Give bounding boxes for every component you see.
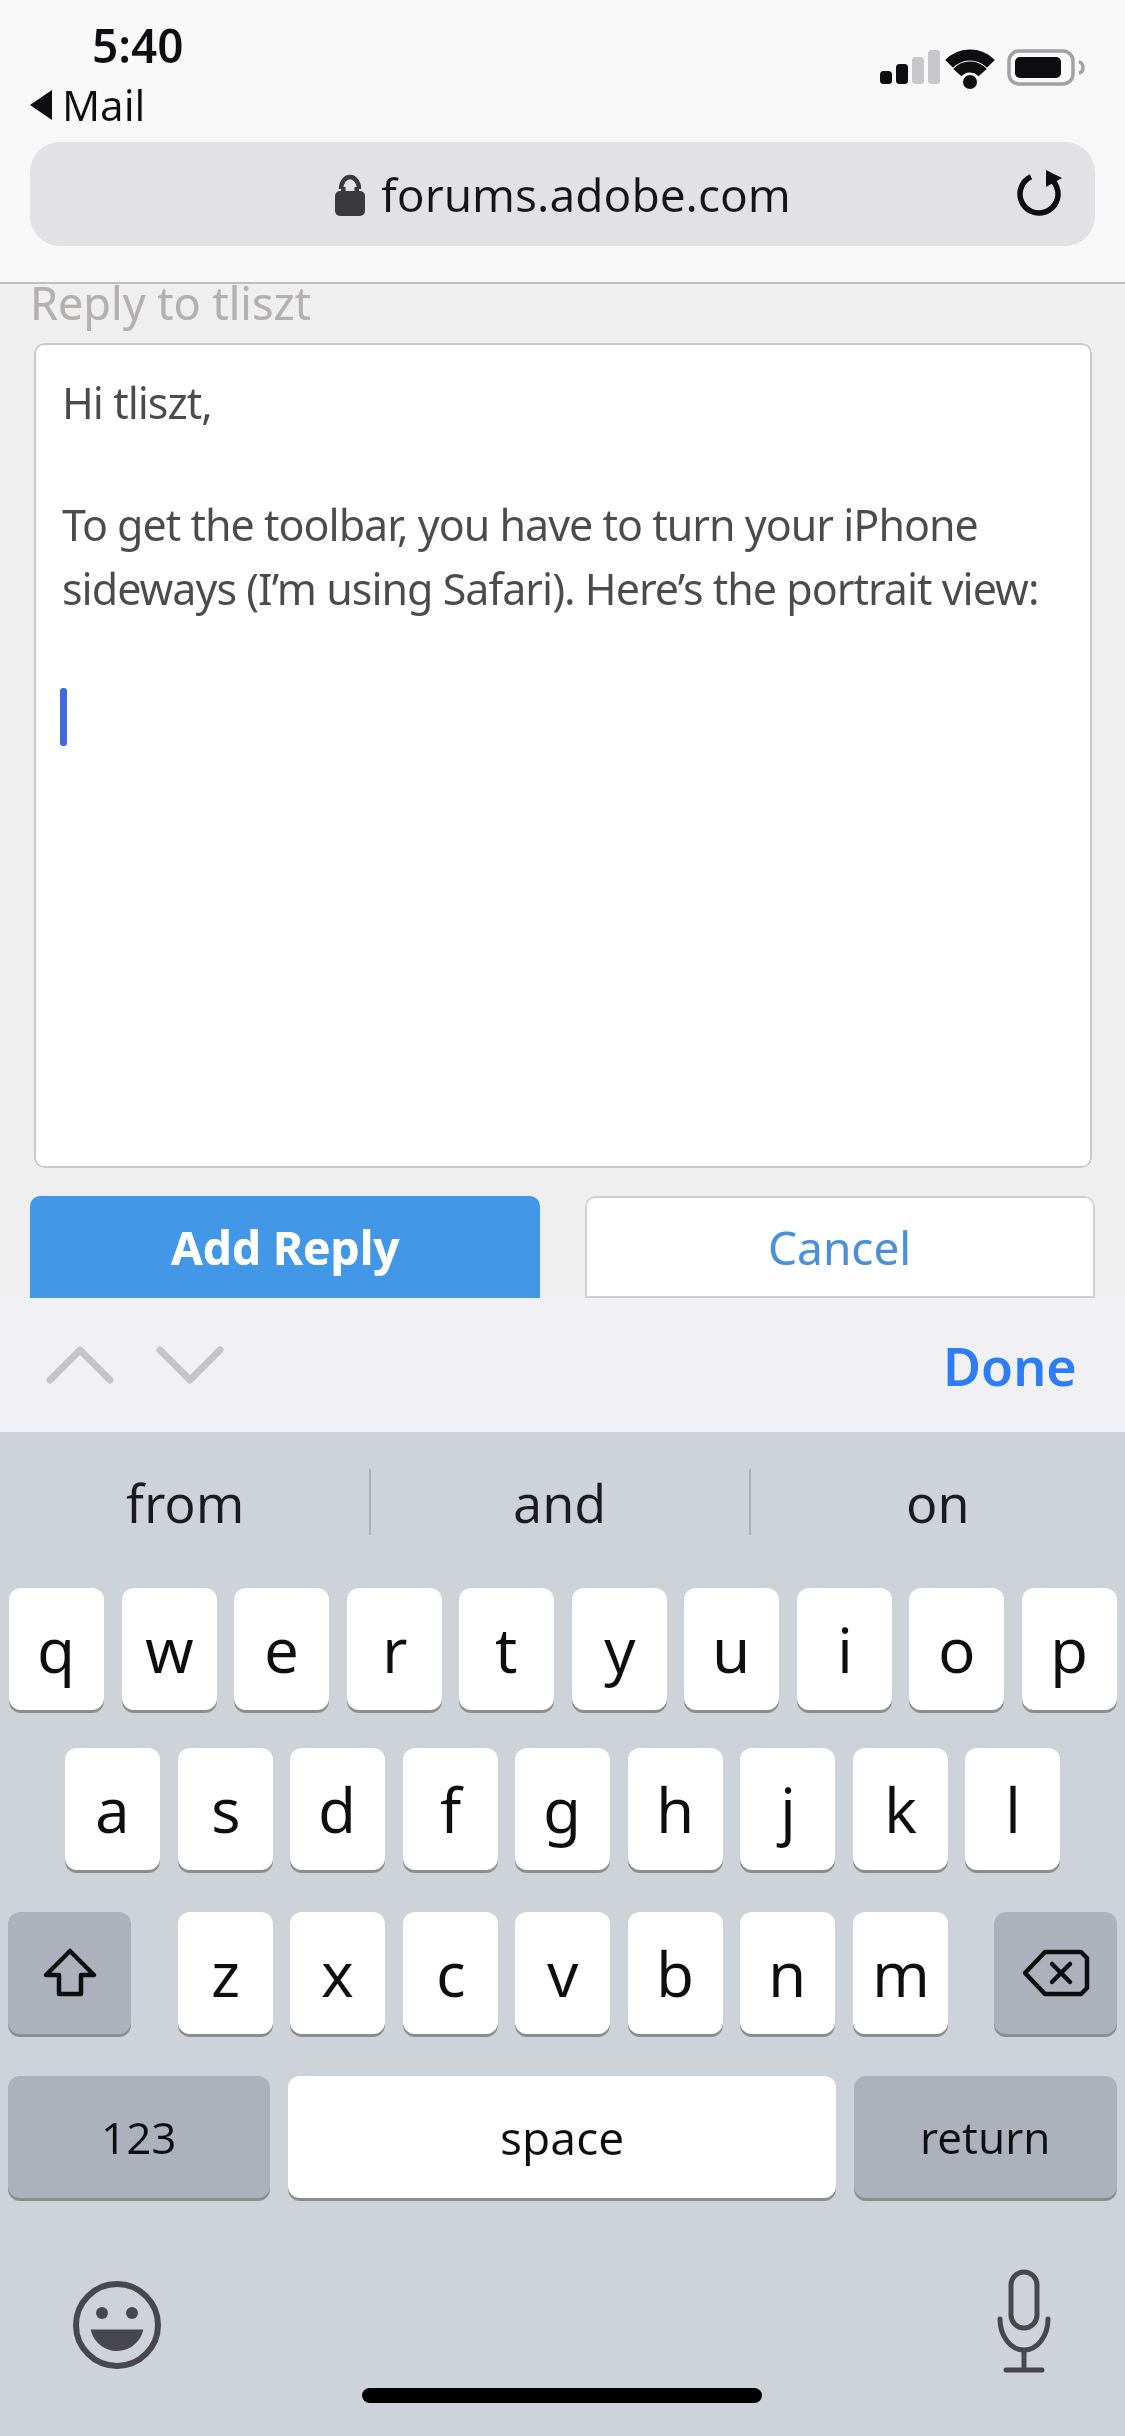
staticText: k bbox=[884, 1767, 918, 1851]
button[interactable] bbox=[155, 1342, 225, 1388]
button[interactable]: d bbox=[290, 1748, 385, 1870]
staticText: space bbox=[500, 2106, 625, 2169]
button[interactable]: u bbox=[684, 1588, 779, 1710]
staticText: u bbox=[712, 1607, 751, 1691]
button[interactable]: l bbox=[965, 1748, 1060, 1870]
staticText: a bbox=[95, 1767, 130, 1851]
staticText: z bbox=[211, 1931, 241, 2015]
button[interactable]: c bbox=[403, 1912, 498, 2034]
button[interactable]: Done bbox=[943, 1330, 1077, 1401]
button[interactable]: Hi tliszt, bbox=[34, 343, 1092, 1168]
button[interactable]: x bbox=[290, 1912, 385, 2034]
staticText: To get the toolbar, you have to turn you… bbox=[62, 495, 1039, 618]
staticText: r bbox=[382, 1607, 408, 1691]
staticText: v bbox=[547, 1931, 579, 2015]
staticText: 5:40 bbox=[92, 14, 184, 77]
staticText: b bbox=[656, 1931, 695, 2015]
button[interactable]: Mail bbox=[26, 76, 146, 133]
button[interactable]: r bbox=[347, 1588, 442, 1710]
staticText: n bbox=[768, 1931, 807, 2015]
button[interactable]: a bbox=[65, 1748, 160, 1870]
button[interactable]: f bbox=[403, 1748, 498, 1870]
button[interactable]: i bbox=[797, 1588, 892, 1710]
button[interactable]: forums.adobe.com bbox=[30, 142, 1095, 246]
staticText: h bbox=[656, 1767, 695, 1851]
button[interactable]: t bbox=[459, 1588, 554, 1710]
staticText: i bbox=[837, 1607, 853, 1691]
button[interactable]: 123 bbox=[8, 2076, 270, 2198]
button[interactable]: j bbox=[740, 1748, 835, 1870]
button[interactable]: k bbox=[853, 1748, 948, 1870]
staticText: forums.adobe.com bbox=[381, 163, 791, 226]
button[interactable] bbox=[8, 1912, 131, 2034]
staticText: d bbox=[318, 1767, 357, 1851]
staticText: c bbox=[436, 1931, 466, 2015]
button[interactable]: z bbox=[178, 1912, 273, 2034]
staticText: 123 bbox=[101, 2107, 177, 2167]
staticText: and bbox=[513, 1467, 607, 1538]
staticText: q bbox=[37, 1607, 76, 1691]
button[interactable] bbox=[992, 2270, 1056, 2380]
staticText: p bbox=[1050, 1607, 1089, 1691]
staticText: Cancel bbox=[768, 1216, 912, 1279]
staticText: l bbox=[1005, 1767, 1021, 1851]
staticText: t bbox=[495, 1607, 518, 1691]
staticText: Mail bbox=[62, 76, 146, 133]
staticText: Done bbox=[943, 1330, 1077, 1401]
staticText: m bbox=[872, 1931, 930, 2015]
button[interactable] bbox=[73, 2281, 161, 2369]
button[interactable]: p bbox=[1022, 1588, 1117, 1710]
button[interactable]: Cancel bbox=[585, 1196, 1095, 1298]
staticText: e bbox=[264, 1607, 299, 1691]
staticText: g bbox=[543, 1767, 582, 1851]
staticText: y bbox=[604, 1607, 636, 1691]
button[interactable]: e bbox=[234, 1588, 329, 1710]
staticText: from bbox=[126, 1467, 245, 1538]
staticText: s bbox=[211, 1767, 241, 1851]
button[interactable]: w bbox=[122, 1588, 217, 1710]
staticText: x bbox=[321, 1931, 354, 2015]
button[interactable]: b bbox=[628, 1912, 723, 2034]
button[interactable]: space bbox=[288, 2076, 836, 2198]
staticText: j bbox=[780, 1767, 796, 1851]
button[interactable]: h bbox=[628, 1748, 723, 1870]
button[interactable]: n bbox=[740, 1912, 835, 2034]
button[interactable]: o bbox=[909, 1588, 1004, 1710]
button[interactable]: y bbox=[572, 1588, 667, 1710]
button[interactable]: s bbox=[178, 1748, 273, 1870]
button[interactable]: and bbox=[370, 1432, 750, 1572]
button[interactable]: Add Reply bbox=[30, 1196, 540, 1298]
button[interactable] bbox=[45, 1342, 115, 1388]
button[interactable]: on bbox=[750, 1432, 1125, 1572]
button[interactable]: g bbox=[515, 1748, 610, 1870]
staticText: Reply to tliszt bbox=[30, 272, 311, 333]
button[interactable]: m bbox=[853, 1912, 948, 2034]
staticText: on bbox=[906, 1467, 970, 1538]
button[interactable]: q bbox=[9, 1588, 104, 1710]
staticText: return bbox=[920, 2107, 1051, 2167]
button[interactable]: from bbox=[0, 1432, 370, 1572]
staticText: Hi tliszt, bbox=[62, 373, 212, 432]
staticText: w bbox=[145, 1607, 194, 1691]
button[interactable]: return bbox=[854, 2076, 1117, 2198]
staticText: Add Reply bbox=[171, 1216, 400, 1279]
button[interactable]: v bbox=[515, 1912, 610, 2034]
button[interactable] bbox=[994, 1912, 1117, 2034]
staticText: o bbox=[938, 1607, 976, 1691]
staticText: f bbox=[440, 1767, 462, 1851]
